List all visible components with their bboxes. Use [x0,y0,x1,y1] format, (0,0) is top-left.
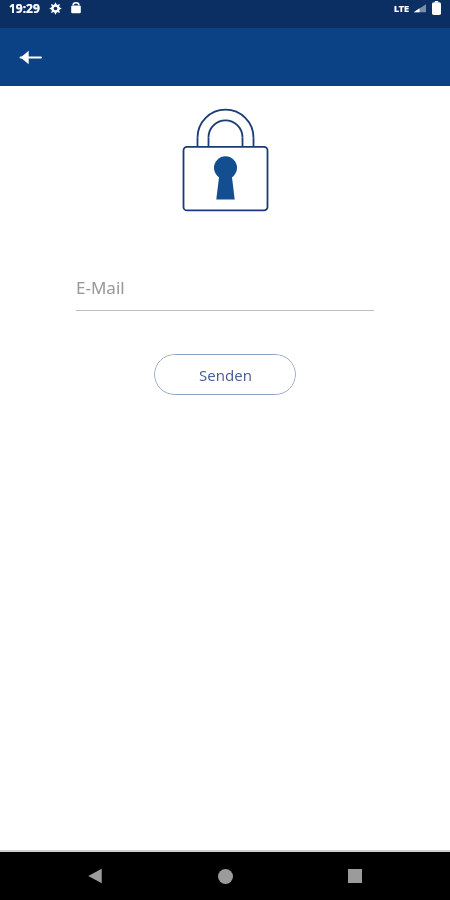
button[interactable]: Back [60,852,130,900]
button[interactable]: Back [6,33,54,81]
staticText: Senden [199,365,252,385]
staticText: E-Mail [76,276,125,299]
button[interactable]: Senden [154,354,296,395]
button[interactable]: E-Mail [76,276,374,311]
button[interactable]: Recents [320,852,390,900]
staticText: LTE [394,2,410,14]
button[interactable]: Home [190,852,260,900]
staticText: 19:29 [9,0,40,16]
